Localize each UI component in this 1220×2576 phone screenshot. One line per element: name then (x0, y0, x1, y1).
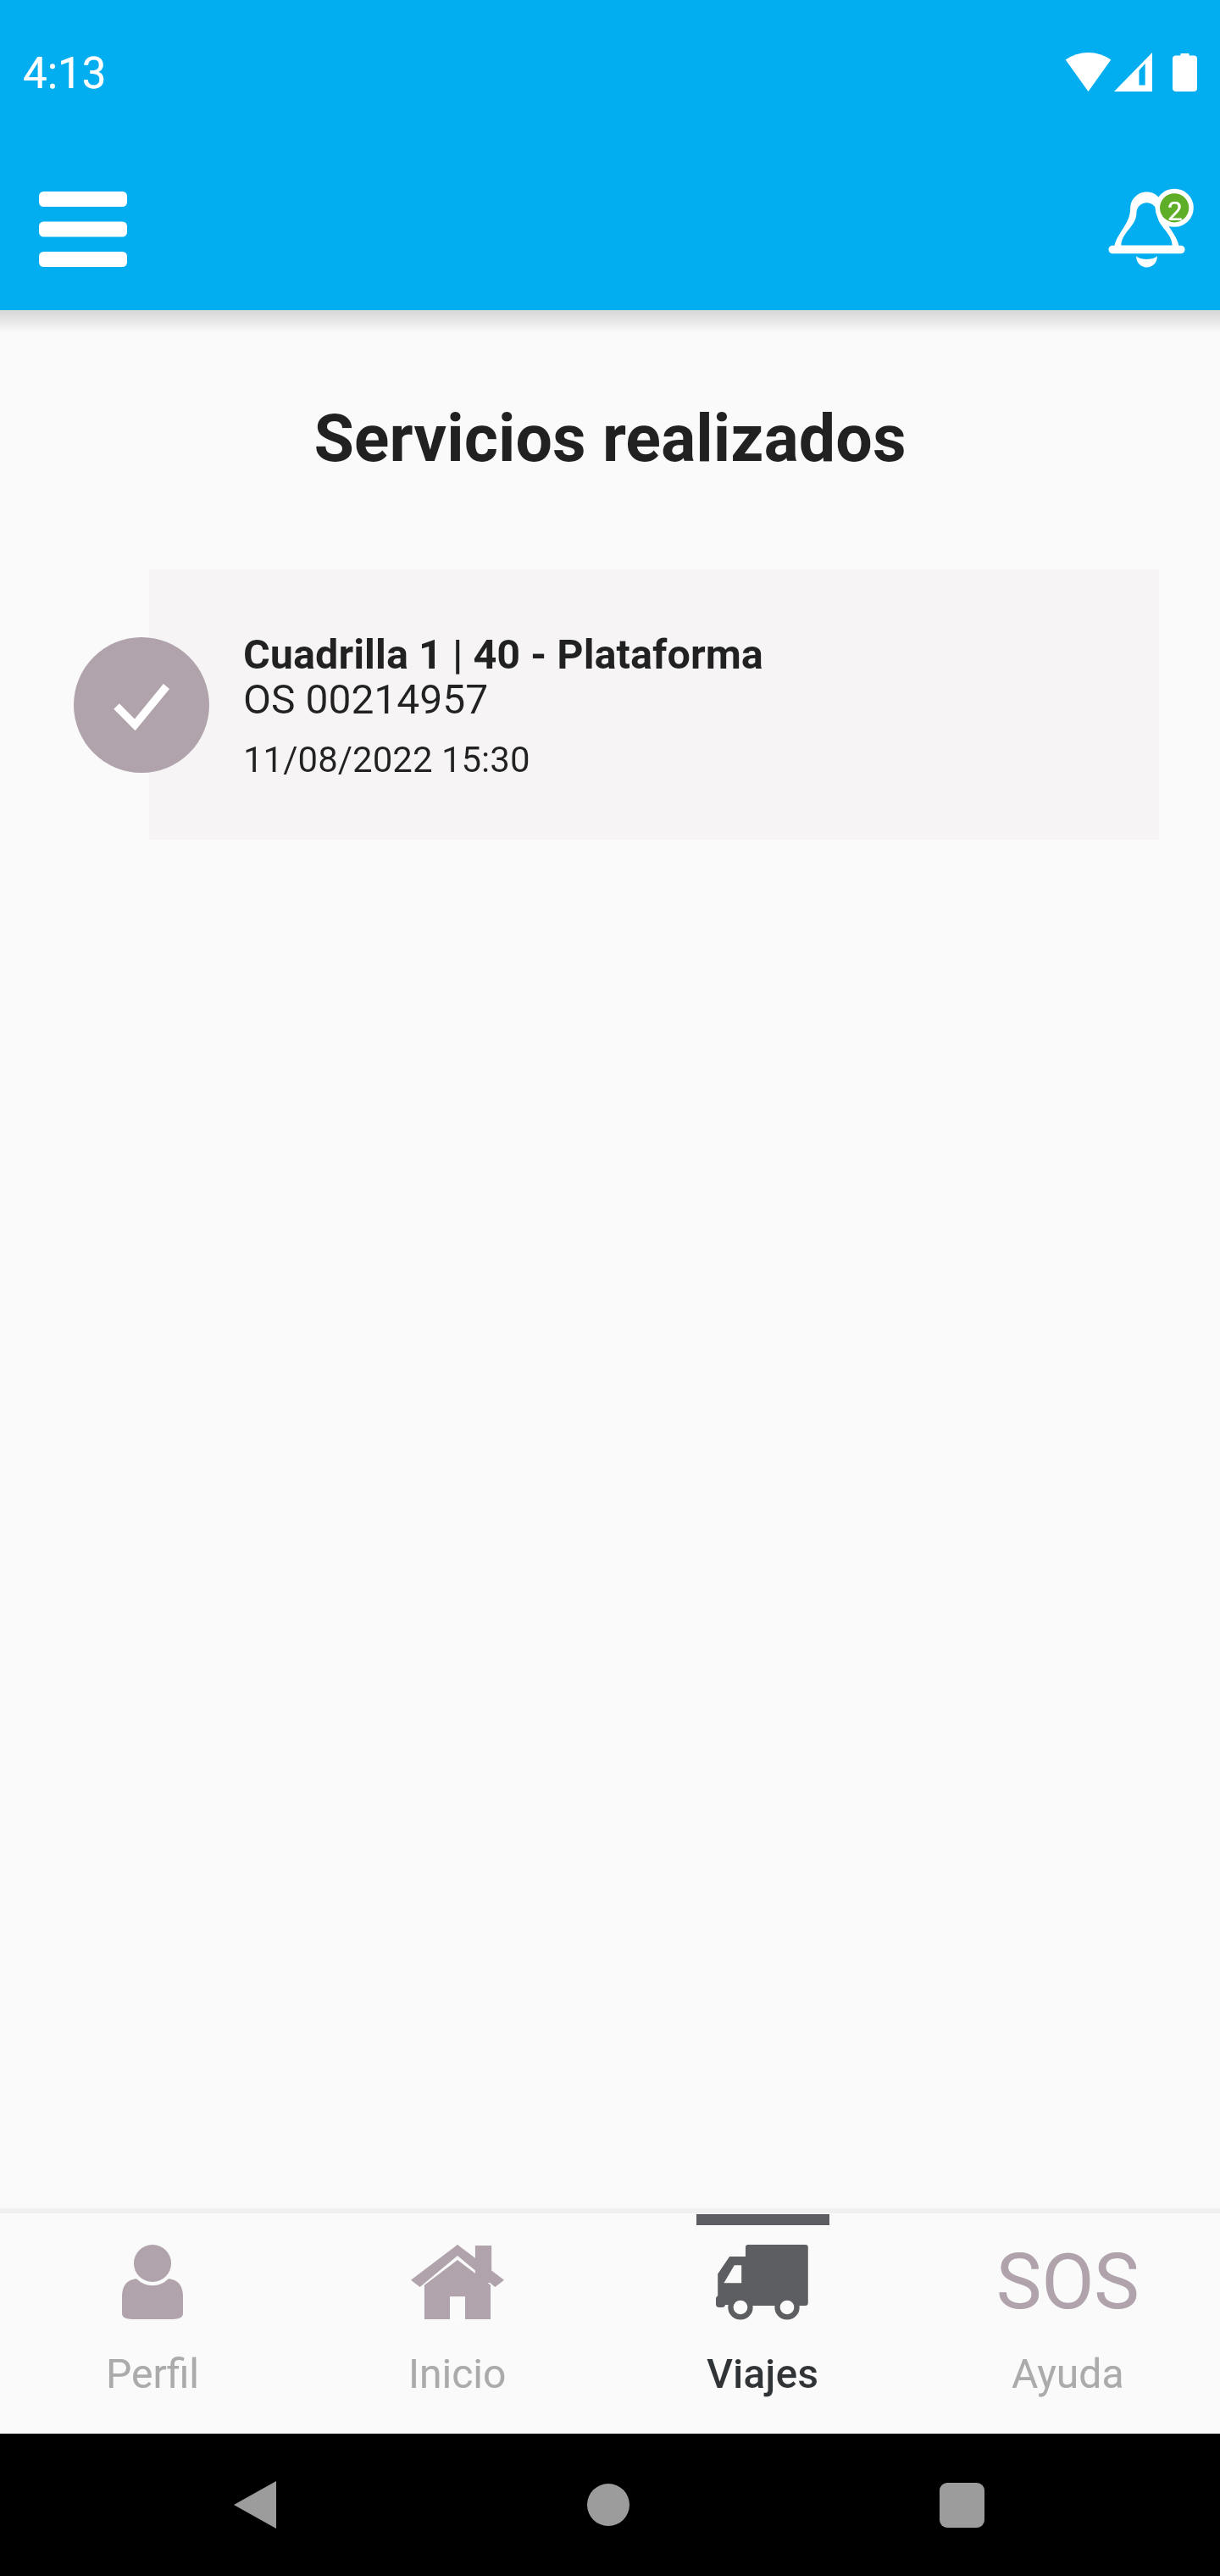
staticText: OS 00214957 (243, 675, 489, 723)
button[interactable]: Open navigation menu (12, 158, 154, 300)
button[interactable]: SOS (915, 2213, 1220, 2434)
staticText: Cuadrilla 1 | 40 - Plataforma (243, 630, 763, 679)
staticText: Ayuda (1012, 2350, 1124, 2397)
button[interactable]: Cuadrilla 1 | 40 - Plataforma (64, 568, 1161, 841)
staticText: 11/08/2022 15:30 (243, 739, 530, 780)
button[interactable]: Home (552, 2449, 664, 2561)
button[interactable]: Perfil (0, 2213, 305, 2434)
button[interactable]: Viajes (610, 2213, 915, 2434)
button[interactable]: Notifications (1075, 158, 1217, 300)
button[interactable]: Back (199, 2449, 311, 2561)
button[interactable]: Recents (906, 2449, 1018, 2561)
staticText: Viajes (707, 2350, 818, 2397)
staticText: Servicios realizados (0, 400, 1220, 476)
staticText: 4:13 (23, 48, 107, 99)
staticText: 2 (1167, 196, 1183, 227)
staticText: Inicio (408, 2350, 507, 2397)
button[interactable]: Inicio (305, 2213, 610, 2434)
staticText: SOS (996, 2238, 1140, 2327)
staticText: Perfil (106, 2350, 199, 2397)
